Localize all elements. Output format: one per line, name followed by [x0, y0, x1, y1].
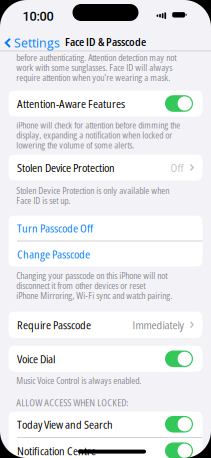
staticText: Change Passcode: [17, 246, 90, 262]
staticText: Require Passcode: [17, 317, 91, 332]
staticText: Music Voice Control is always enabled.: [16, 374, 141, 387]
staticText: 10:00: [22, 9, 53, 24]
staticText: Changing your passcode on this iPhone wi…: [16, 269, 167, 282]
button[interactable]: Voice Dial: [165, 350, 193, 367]
button[interactable]: Back: [0, 32, 60, 53]
staticText: Turn Passcode Off: [17, 220, 93, 236]
staticText: Off: [170, 160, 183, 175]
staticText: iPhone Mirroring, Wi-Fi sync and watch p…: [16, 289, 172, 302]
staticText: Stolen Device Protection is only availab…: [16, 184, 169, 197]
staticText: display, expanding a notification when l…: [16, 129, 172, 141]
button[interactable]: Notification Centre: [165, 442, 193, 458]
staticText: iPhone will check for attention before d…: [16, 119, 180, 131]
staticText: Immediately: [132, 317, 183, 332]
staticText: require attention when you're wearing a …: [16, 71, 170, 84]
staticText: disconnect it from other devices or rese…: [16, 279, 145, 292]
button[interactable]: Attention-Aware Features: [165, 95, 193, 112]
button[interactable]: Change Passcode: [8, 241, 202, 266]
staticText: Notification Centre: [17, 443, 96, 458]
staticText: Today View and Search: [17, 416, 113, 432]
staticText: Face ID is set up.: [16, 194, 70, 207]
button[interactable]: Turn Passcode Off: [8, 215, 202, 240]
button[interactable]: Stolen Device Protection: [8, 154, 202, 180]
staticText: before authenticating. Attention detecti…: [16, 51, 176, 64]
staticText: Voice Dial: [17, 351, 55, 367]
button[interactable]: Today View and Search: [165, 416, 193, 432]
staticText: ALLOW ACCESS WHEN LOCKED:: [16, 396, 128, 409]
staticText: Attention-Aware Features: [17, 96, 125, 111]
staticText: Stolen Device Protection: [17, 160, 115, 175]
button[interactable]: Require Passcode: [8, 311, 202, 338]
staticText: work with some sunglasses. Face ID will …: [16, 61, 172, 74]
staticText: lowering the volume of some alerts.: [16, 139, 134, 151]
staticText: Face ID & Passcode: [65, 34, 146, 49]
staticText: Settings: [14, 34, 60, 51]
